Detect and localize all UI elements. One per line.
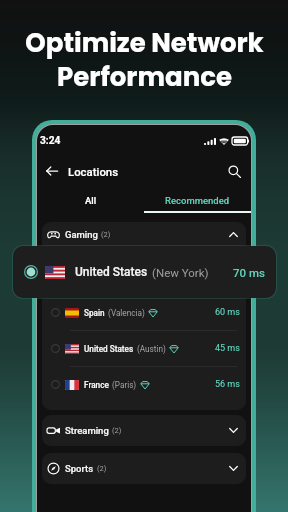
staticText: 60 ms xyxy=(215,307,240,318)
staticText: Sports xyxy=(65,463,94,474)
staticText: (2) xyxy=(112,426,122,435)
staticText: United States xyxy=(75,265,148,279)
staticText: Optimize Network xyxy=(25,25,264,61)
staticText: Streaming xyxy=(65,425,109,436)
staticText: (Valencia) xyxy=(108,308,145,318)
staticText: Performance xyxy=(57,59,232,95)
staticText: (2) xyxy=(97,464,107,473)
button[interactable]: Recommended xyxy=(144,192,251,208)
staticText: Locations xyxy=(68,165,119,178)
staticText: Gaming xyxy=(65,229,98,240)
button[interactable]: Spain xyxy=(51,295,240,330)
staticText: (Austin) xyxy=(137,344,166,354)
button[interactable]: Sports xyxy=(42,453,246,484)
staticText: Spain xyxy=(84,308,105,318)
staticText: 56 ms xyxy=(215,379,240,390)
staticText: All xyxy=(85,195,97,206)
staticText: France xyxy=(84,380,109,390)
button[interactable]: All xyxy=(37,192,144,208)
button[interactable]: Search xyxy=(223,160,245,182)
button[interactable]: Streaming xyxy=(42,415,246,446)
button[interactable]: France xyxy=(51,367,240,402)
staticText: Recommended xyxy=(165,195,230,206)
button[interactable]: Back xyxy=(41,160,63,182)
staticText: (2) xyxy=(101,230,111,239)
button[interactable]: United States xyxy=(51,331,240,366)
staticText: 45 ms xyxy=(215,343,240,354)
button[interactable]: United States xyxy=(13,246,276,298)
staticText: 3:24 xyxy=(40,135,61,147)
staticText: (New York) xyxy=(152,266,209,279)
staticText: 70 ms xyxy=(233,266,265,279)
staticText: United States xyxy=(84,344,134,354)
staticText: (Paris) xyxy=(112,380,137,390)
button[interactable]: Gaming xyxy=(42,222,246,247)
